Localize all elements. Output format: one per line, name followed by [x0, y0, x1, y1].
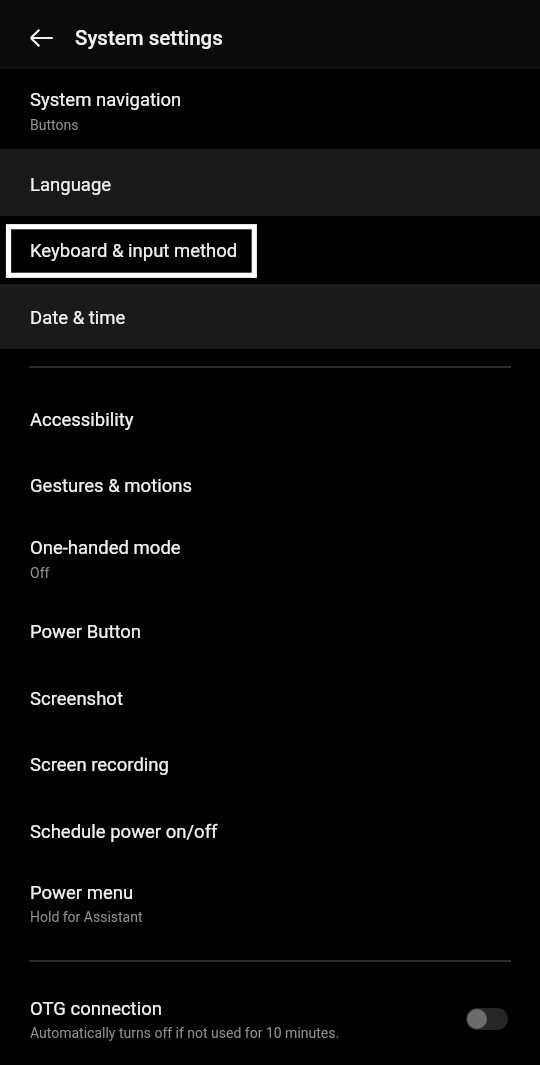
- staticText: Language: [30, 174, 112, 196]
- staticText: One-handed mode: [30, 537, 181, 559]
- staticText: Gestures & motions: [30, 475, 192, 497]
- button[interactable]: Screenshot: [0, 664, 540, 731]
- staticText: Screenshot: [30, 688, 123, 710]
- staticText: System settings: [75, 26, 223, 50]
- button[interactable]: Date & time: [0, 284, 540, 349]
- staticText: Power menu: [30, 882, 134, 904]
- button[interactable]: Language: [0, 149, 540, 216]
- button[interactable]: System navigation: [0, 68, 540, 149]
- staticText: Off: [30, 565, 50, 581]
- staticText: Buttons: [30, 117, 79, 133]
- staticText: Automatically turns off if not used for …: [30, 1025, 340, 1041]
- staticText: Keyboard & input method: [30, 240, 238, 262]
- button[interactable]: Accessibility: [0, 386, 540, 452]
- staticText: Screen recording: [30, 754, 169, 776]
- staticText: Date & time: [30, 307, 126, 329]
- button[interactable]: Power menu: [0, 864, 540, 943]
- button[interactable]: Schedule power on/off: [0, 797, 540, 864]
- staticText: Schedule power on/off: [30, 821, 218, 843]
- staticText: Accessibility: [30, 409, 134, 431]
- staticText: Power Button: [30, 621, 142, 643]
- staticText: System navigation: [30, 89, 182, 111]
- button[interactable]: OTG connection toggle: [466, 1008, 508, 1030]
- staticText: Hold for Assistant: [30, 909, 143, 925]
- button[interactable]: One-handed mode: [0, 518, 540, 597]
- button[interactable]: Keyboard & input method: [0, 216, 540, 284]
- button[interactable]: Screen recording: [0, 731, 540, 797]
- staticText: OTG connection: [30, 998, 162, 1020]
- button[interactable]: Power Button: [0, 597, 540, 664]
- button[interactable]: Gestures & motions: [0, 452, 540, 518]
- button[interactable]: OTG connection: [0, 979, 540, 1058]
- button[interactable]: Back: [20, 16, 64, 60]
